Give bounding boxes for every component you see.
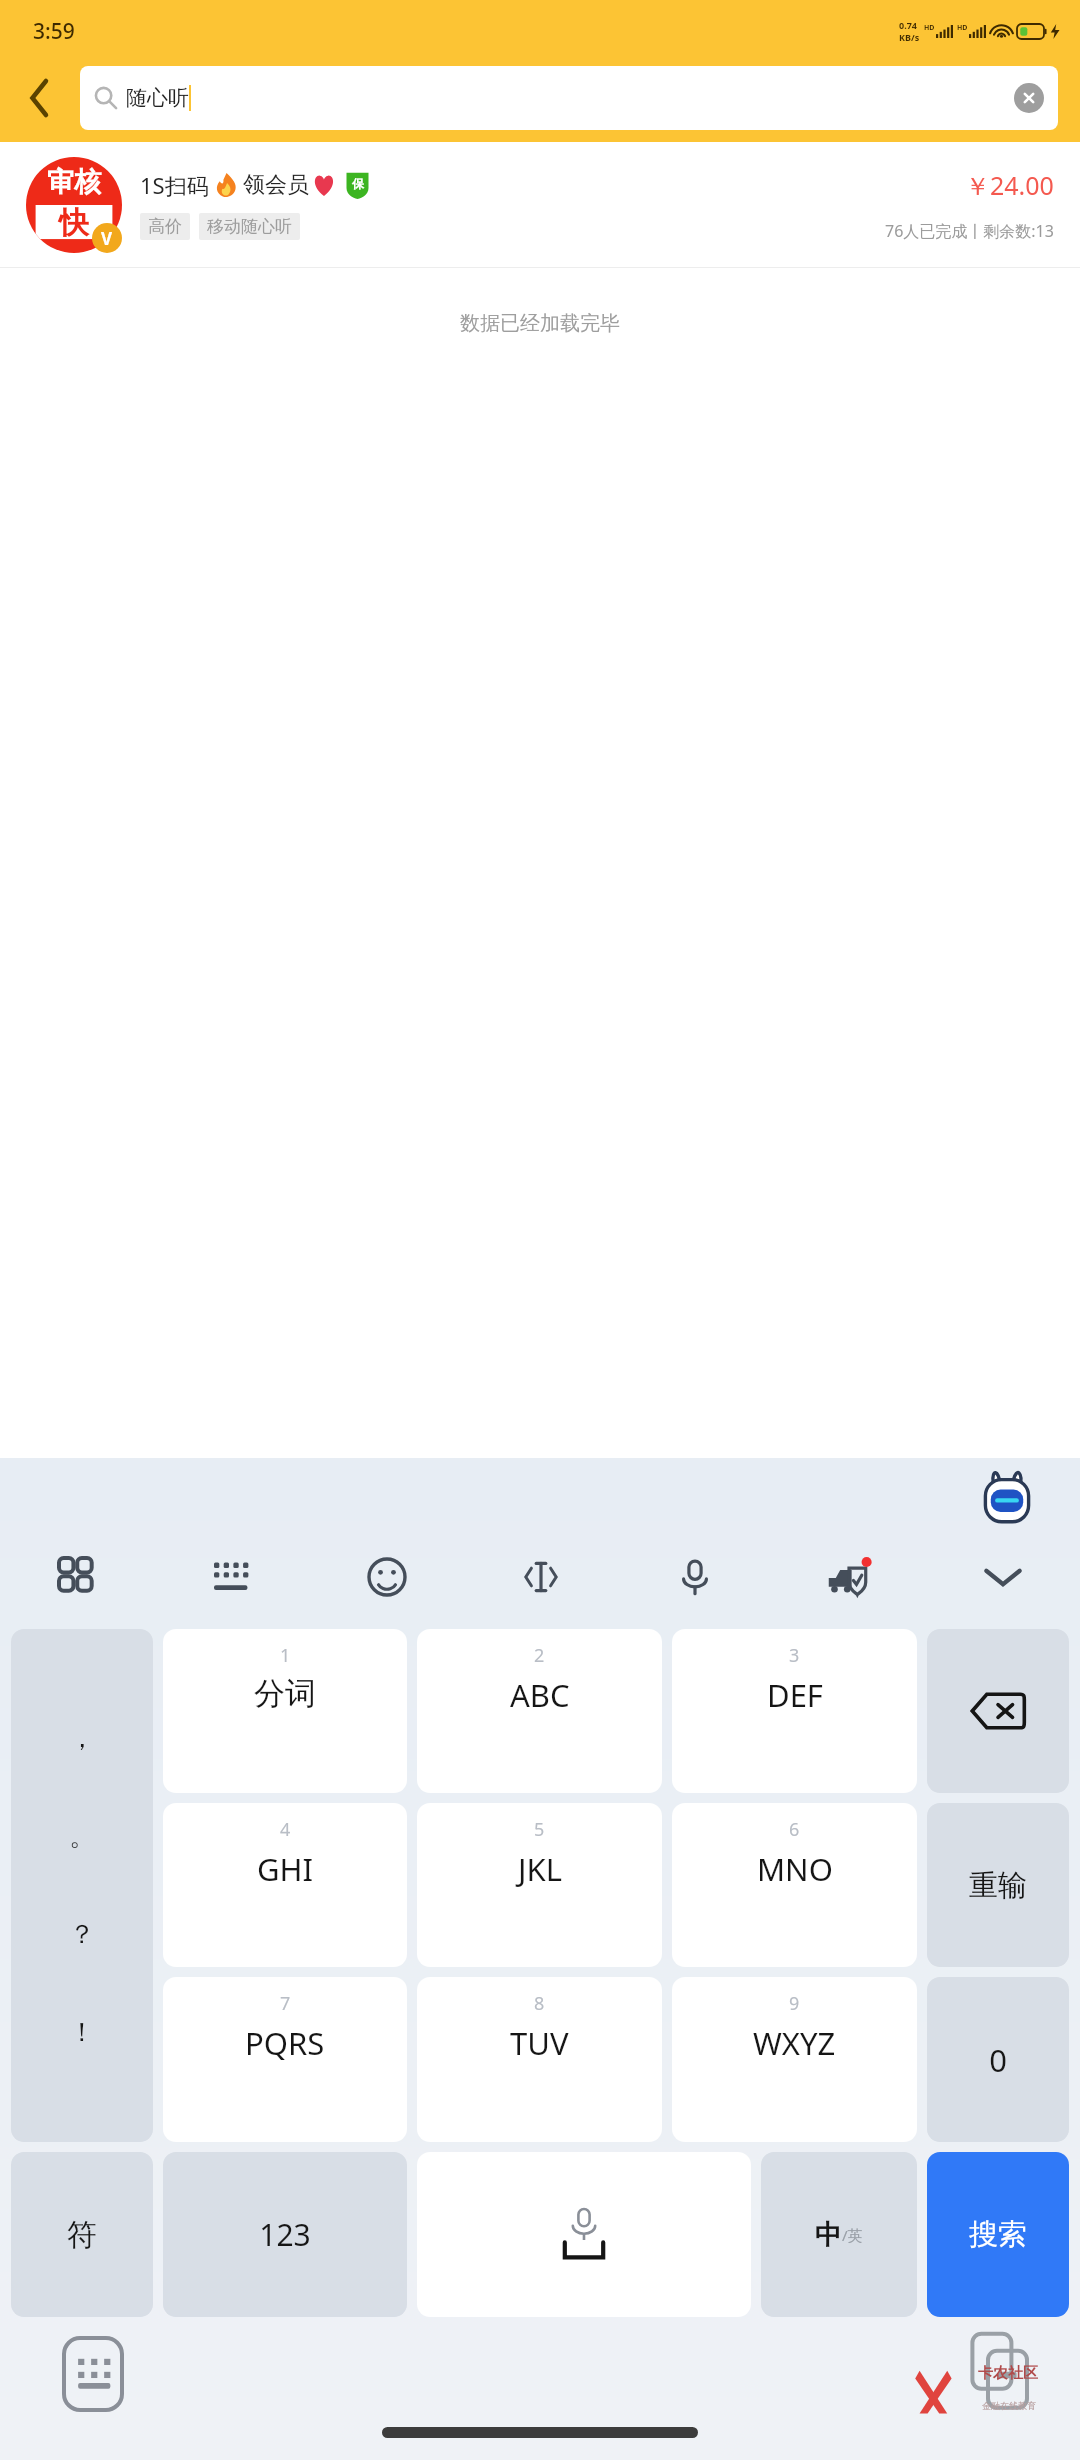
staticText: 快	[59, 204, 89, 242]
staticText: 搜索	[969, 2216, 1027, 2253]
staticText: 金融在线教育	[982, 2400, 1036, 2411]
staticText: JKL	[518, 1848, 562, 1890]
staticText: WXYZ	[753, 2022, 836, 2064]
button[interactable]: 符	[11, 2152, 153, 2317]
staticText: 2	[534, 1643, 545, 1668]
staticText: 领会员	[243, 171, 309, 199]
button[interactable]: 中	[761, 2152, 917, 2317]
staticText: 保	[352, 176, 364, 191]
staticText: 审核	[47, 165, 101, 199]
staticText: PQRS	[245, 2022, 325, 2064]
staticText: ！	[69, 2016, 95, 2049]
staticText: TUV	[510, 2022, 569, 2064]
staticText: /英	[842, 2225, 863, 2245]
staticText: 3:59	[33, 17, 75, 46]
staticText: 随心听	[126, 85, 189, 111]
button[interactable]: 重输	[927, 1803, 1069, 1967]
staticText: 6	[789, 1817, 800, 1842]
staticText: 分词	[254, 1674, 316, 1713]
staticText: 卡农社区	[978, 2364, 1038, 2383]
staticText: GHI	[257, 1848, 314, 1890]
button[interactable]: Move cursor	[464, 1536, 618, 1618]
button[interactable]: 1	[163, 1629, 407, 1793]
staticText: 5	[534, 1817, 545, 1842]
staticText: 0	[989, 2039, 1007, 2081]
button[interactable]: Backspace	[927, 1629, 1069, 1793]
staticText: 。	[69, 1820, 95, 1853]
button[interactable]: 4	[163, 1803, 407, 1967]
staticText: 9	[789, 1991, 800, 2016]
button[interactable]: Emoji	[310, 1536, 464, 1618]
button[interactable]: 搜索	[927, 2152, 1069, 2317]
button[interactable]: 2	[417, 1629, 662, 1793]
staticText: KB/s	[899, 31, 920, 43]
button[interactable]: Hide keyboard	[926, 1536, 1080, 1618]
staticText: 76人已完成丨剩余数:13	[885, 220, 1054, 242]
button[interactable]: Back	[0, 62, 80, 134]
staticText: 符	[67, 2216, 97, 2254]
staticText: ，	[69, 1722, 95, 1755]
staticText: 123	[259, 2214, 311, 2255]
button[interactable]: Apps	[0, 1536, 155, 1618]
button[interactable]: Keyboard layout	[155, 1536, 310, 1618]
button[interactable]: 移动随心听	[199, 213, 300, 240]
button[interactable]: 6	[672, 1803, 917, 1967]
button[interactable]: Clear text	[1014, 83, 1044, 113]
button[interactable]: 8	[417, 1977, 662, 2142]
staticText: 7	[280, 1991, 291, 2016]
staticText: 中	[815, 2218, 842, 2252]
staticText: MNO	[757, 1848, 833, 1890]
button[interactable]: Promotion	[772, 1536, 926, 1618]
button[interactable]: 9	[672, 1977, 917, 2142]
button[interactable]: 审核	[0, 142, 1080, 267]
button[interactable]: 高价	[140, 213, 190, 240]
staticText: 4	[280, 1817, 291, 1842]
button[interactable]: Assistant	[980, 1466, 1034, 1528]
button[interactable]: 0	[927, 1977, 1069, 2142]
staticText: 重输	[969, 1867, 1027, 1904]
staticText: 0.74	[899, 19, 917, 31]
staticText: HD	[957, 23, 968, 33]
staticText: ABC	[510, 1674, 570, 1716]
staticText: ￥24.00	[965, 168, 1054, 202]
button[interactable]: 123	[163, 2152, 407, 2317]
button[interactable]: 3	[672, 1629, 917, 1793]
button[interactable]: Space	[417, 2152, 751, 2317]
staticText: 移动随心听	[207, 216, 292, 237]
staticText: 3	[789, 1643, 800, 1668]
staticText: ？	[69, 1918, 95, 1951]
button[interactable]: Voice input	[618, 1536, 772, 1618]
staticText: 1S扫码	[140, 170, 209, 200]
staticText: DEF	[767, 1674, 823, 1716]
staticText: V	[101, 227, 113, 250]
button[interactable]: 7	[163, 1977, 407, 2142]
staticText: HD	[924, 23, 935, 33]
staticText: 数据已经加载完毕	[460, 311, 620, 336]
button[interactable]: 随心听	[80, 66, 1058, 130]
button[interactable]: ，	[11, 1629, 153, 2142]
staticText: 8	[534, 1991, 545, 2016]
staticText: 高价	[148, 216, 182, 237]
staticText: 1	[280, 1643, 291, 1668]
button[interactable]: 5	[417, 1803, 662, 1967]
button[interactable]: Switch keyboard	[62, 2336, 124, 2412]
